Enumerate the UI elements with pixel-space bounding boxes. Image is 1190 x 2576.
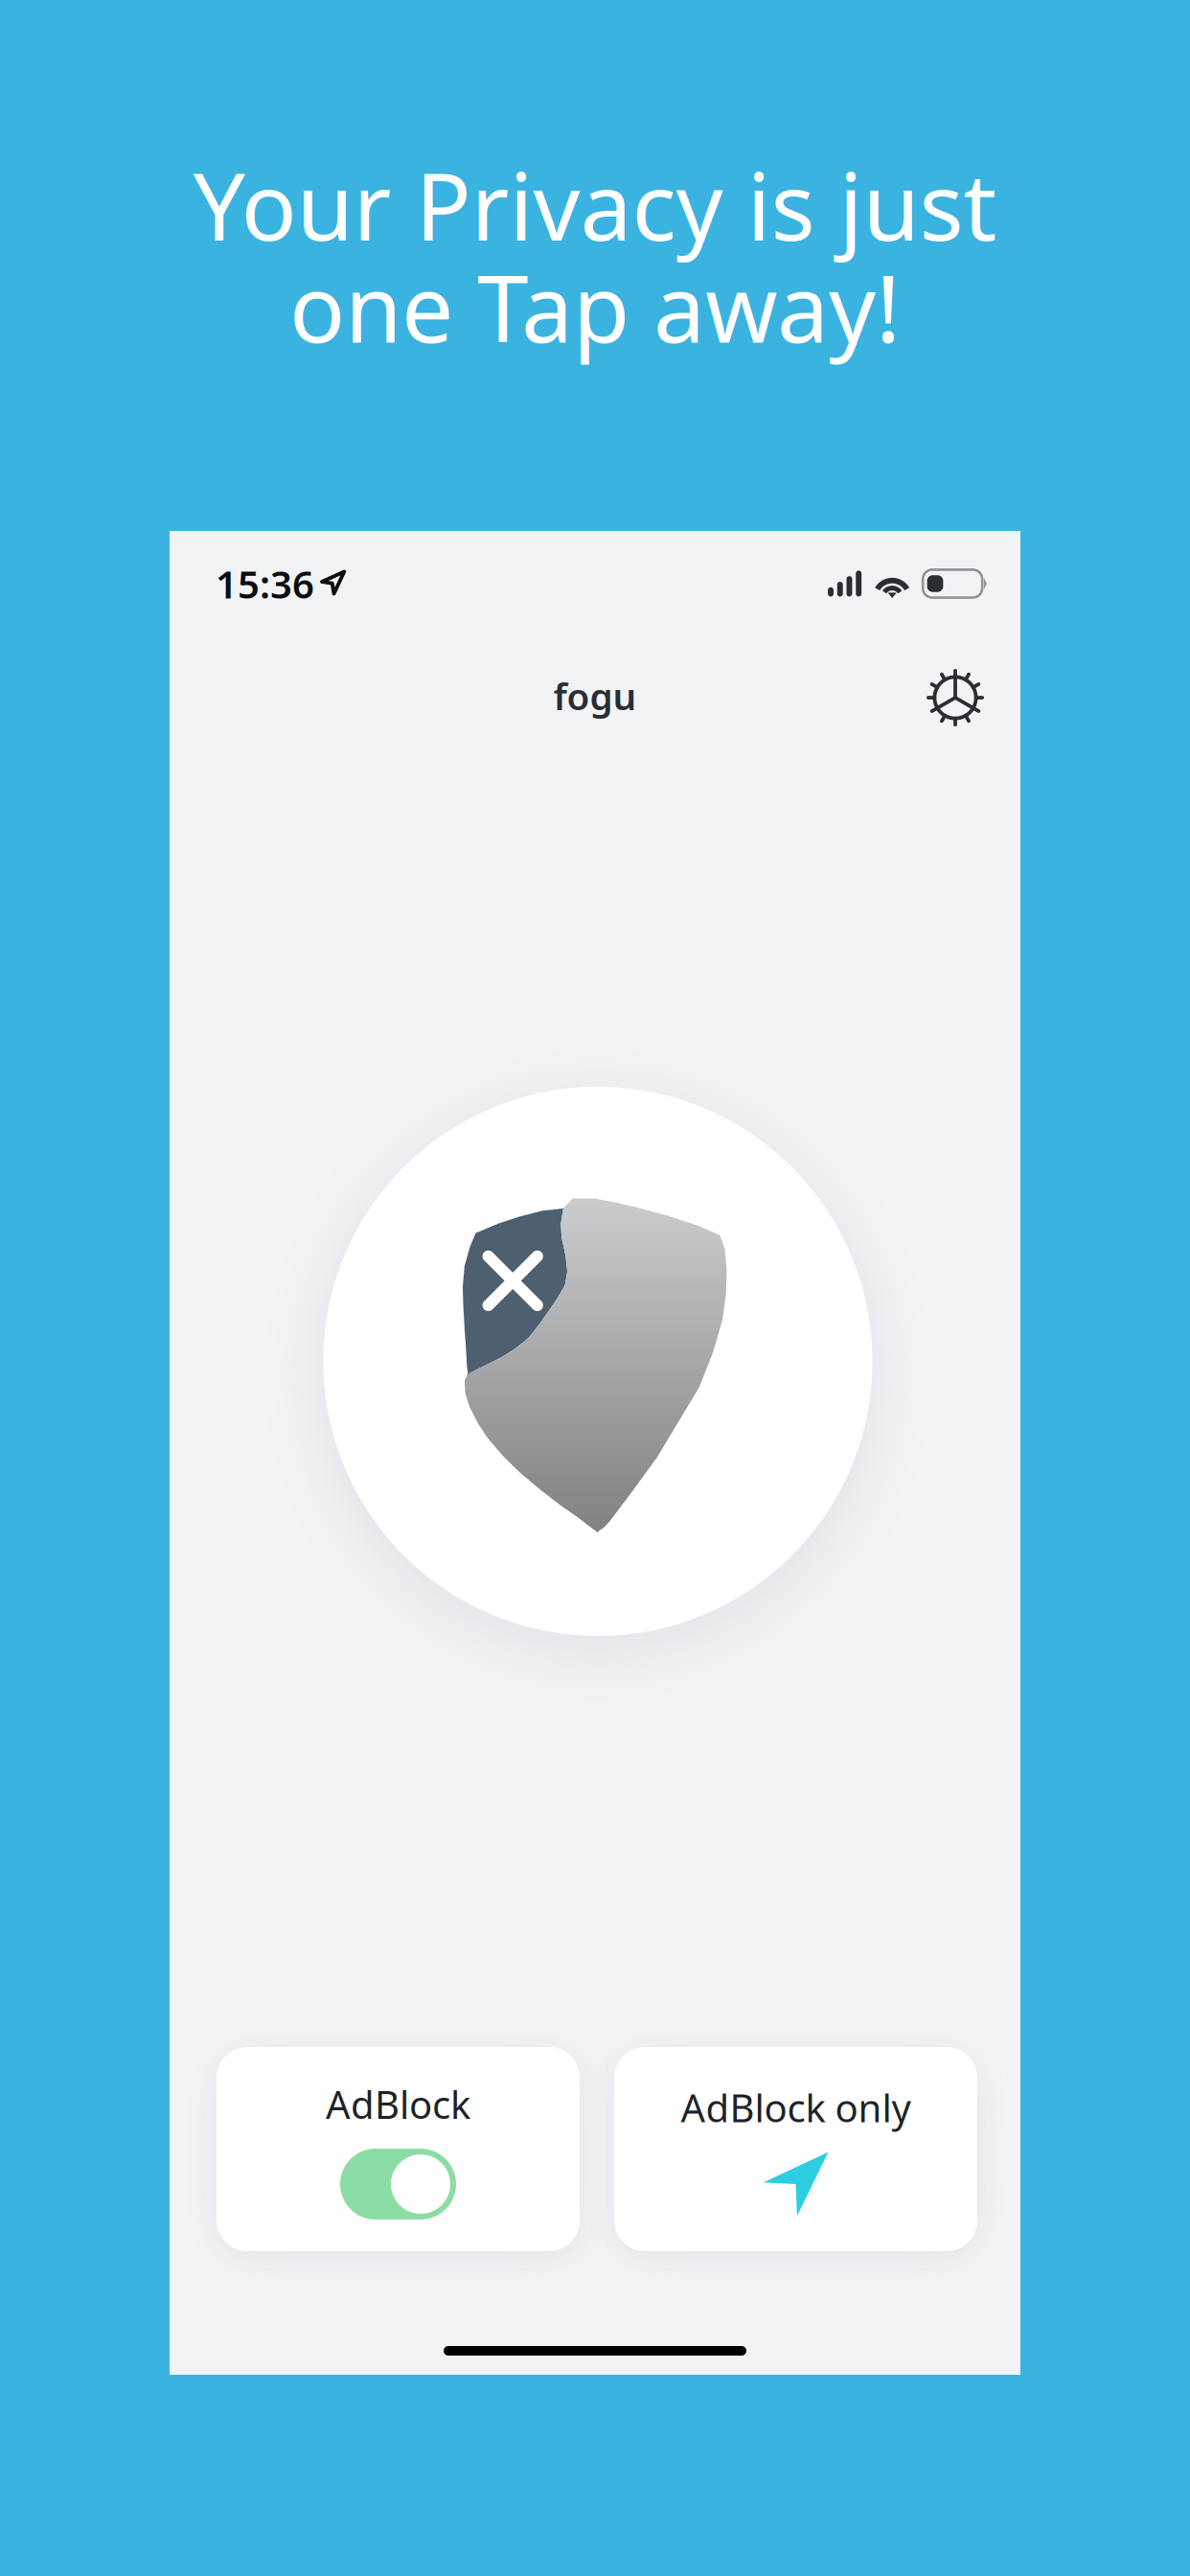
staticText: AdBlock: [326, 2079, 470, 2129]
button[interactable]: AdBlock only: [614, 2047, 977, 2251]
staticText: Your Privacy is just: [193, 144, 997, 266]
staticText: AdBlock only: [681, 2082, 911, 2133]
staticText: fogu: [553, 671, 637, 720]
button[interactable]: Settings: [910, 653, 1000, 743]
staticText: one Tap away!: [289, 246, 901, 368]
staticText: 15:36: [216, 558, 314, 609]
button[interactable]: AdBlock: [217, 2047, 580, 2251]
